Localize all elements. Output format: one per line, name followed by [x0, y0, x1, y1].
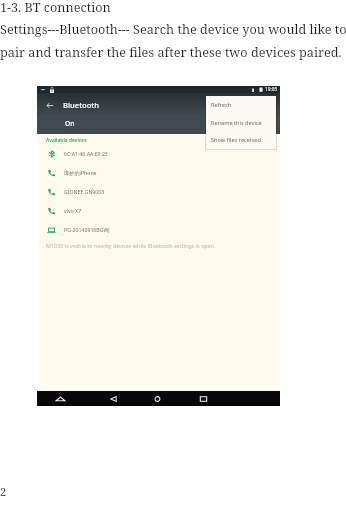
staticText: GIONEE GN9003 — [64, 188, 105, 195]
staticText: 19:05 — [265, 86, 278, 93]
staticText: Show files received — [211, 136, 261, 144]
staticText: M1030 is visible to nearby devices while… — [46, 242, 216, 249]
staticText: Settings---Bluetooth--- Search the devic… — [0, 20, 346, 37]
staticText: PG-20140916BGWJ — [64, 226, 110, 233]
button[interactable]: Rename this device — [206, 114, 276, 131]
staticText: vivo X7 — [64, 207, 82, 214]
button[interactable]: GIONEE GN9003 — [37, 182, 280, 201]
staticText: pair and transfer the files after these … — [0, 43, 342, 60]
button[interactable]: Home — [147, 391, 168, 406]
button[interactable]: Show files received — [206, 131, 276, 148]
staticText: Bluetooth — [63, 100, 99, 110]
staticText: Refresh — [211, 101, 232, 109]
button[interactable]: 谭妙的iPhone — [37, 163, 280, 182]
staticText: On — [65, 119, 75, 128]
staticText: Available devices — [46, 137, 87, 144]
other: Back — [46, 102, 54, 109]
button[interactable]: Recents — [193, 391, 214, 406]
staticText: 6C:A1:46:AA:E0:23 — [64, 150, 108, 157]
button[interactable]: vivo X7 — [37, 201, 280, 220]
button[interactable]: PG-20140916BGWJ — [37, 220, 280, 239]
staticText: 谭妙的iPhone — [64, 169, 97, 176]
button[interactable]: Back — [103, 391, 124, 406]
button[interactable]: On — [37, 114, 280, 133]
staticText: 2 — [0, 484, 7, 499]
staticText: Rename this device — [211, 119, 262, 127]
button[interactable]: Refresh — [206, 96, 276, 113]
button[interactable]: Back — [37, 96, 280, 114]
button[interactable]: 6C:A1:46:AA:E0:23 — [37, 144, 280, 163]
staticText: 1-3. BT connection — [0, 0, 111, 15]
button[interactable]: Up — [50, 391, 71, 406]
